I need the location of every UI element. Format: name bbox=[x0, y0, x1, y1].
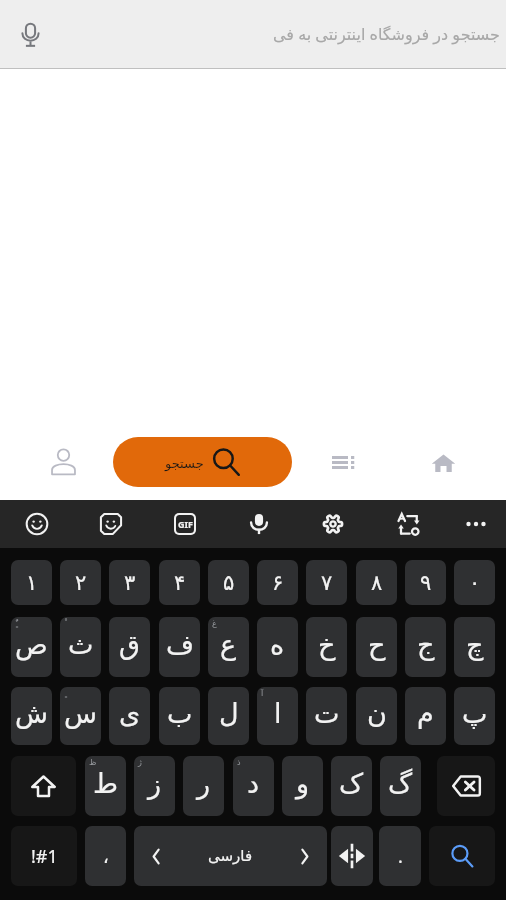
button[interactable]: آ bbox=[257, 687, 298, 745]
staticText: ق bbox=[119, 629, 140, 660]
staticText: خ bbox=[318, 629, 336, 660]
staticText: د bbox=[247, 768, 260, 799]
button[interactable]: ک bbox=[331, 756, 372, 816]
staticText: ب bbox=[167, 698, 193, 729]
button[interactable]: Categories bbox=[320, 439, 366, 485]
button[interactable]: ، bbox=[85, 826, 126, 886]
button[interactable]: و bbox=[282, 756, 323, 816]
staticText: ۸ bbox=[371, 571, 383, 595]
staticText: ف bbox=[166, 629, 194, 660]
button[interactable]: ر bbox=[183, 756, 224, 816]
button[interactable]: ظ bbox=[85, 756, 126, 816]
button[interactable]: Stickers bbox=[89, 500, 133, 548]
button[interactable]: غ bbox=[208, 617, 249, 677]
staticText: ج bbox=[417, 629, 435, 660]
staticText: ک bbox=[339, 768, 364, 799]
button[interactable]: ق bbox=[109, 617, 150, 677]
button[interactable]: ل bbox=[208, 687, 249, 745]
staticText: ث bbox=[68, 629, 94, 660]
button[interactable]: ۴ bbox=[159, 560, 200, 605]
staticText: ۳ bbox=[124, 571, 136, 595]
button[interactable]: گ bbox=[380, 756, 421, 816]
staticText: ۴ bbox=[174, 571, 186, 595]
staticText: جستجو در فروشگاه اینترنتی به فی bbox=[273, 23, 500, 45]
button[interactable]: Symbols bbox=[11, 826, 77, 886]
button[interactable]: More options bbox=[454, 500, 498, 548]
staticText: ز bbox=[148, 768, 162, 799]
button[interactable]: ۷ bbox=[306, 560, 347, 605]
staticText: ۰ bbox=[469, 571, 481, 595]
staticText: ه bbox=[270, 629, 285, 660]
button[interactable]: ۹ bbox=[405, 560, 446, 605]
staticText: گ bbox=[388, 768, 413, 799]
button[interactable]: Shift bbox=[11, 756, 76, 816]
button[interactable]: چ bbox=[454, 617, 495, 677]
button[interactable]: Move cursor bbox=[331, 826, 373, 886]
button[interactable]: ًٌٍ bbox=[11, 617, 52, 677]
button[interactable]: ف bbox=[159, 617, 200, 677]
button[interactable]: Search bbox=[429, 826, 495, 886]
staticText: غ bbox=[212, 619, 217, 628]
staticText: آ bbox=[261, 689, 264, 698]
button[interactable]: ۰ bbox=[454, 560, 495, 605]
button[interactable]: ۲ bbox=[60, 560, 101, 605]
button[interactable]: Emoji bbox=[15, 500, 59, 548]
staticText: جستجو bbox=[165, 456, 204, 471]
staticText: پ bbox=[462, 698, 488, 729]
button[interactable]: ش bbox=[11, 687, 52, 745]
staticText: ذ bbox=[237, 758, 241, 767]
staticText: ت bbox=[314, 698, 340, 729]
button[interactable]: ن bbox=[356, 687, 397, 745]
button[interactable]: ب bbox=[159, 687, 200, 745]
staticText: ص bbox=[15, 629, 48, 660]
staticText: ا bbox=[274, 698, 282, 729]
button[interactable]: ۶ bbox=[257, 560, 298, 605]
staticText: ۷ bbox=[321, 571, 333, 595]
button[interactable]: خ bbox=[306, 617, 347, 677]
staticText: ی bbox=[119, 698, 141, 729]
button[interactable]: ژ bbox=[134, 756, 175, 816]
staticText: س bbox=[64, 698, 97, 729]
button[interactable]: Voice search bbox=[0, 0, 506, 69]
button[interactable]: Space bbox=[134, 826, 327, 886]
button[interactable]: Backspace bbox=[437, 756, 495, 816]
button[interactable]: ه bbox=[257, 617, 298, 677]
staticText: ن bbox=[367, 698, 387, 729]
button[interactable]: م bbox=[405, 687, 446, 745]
button[interactable]: Voice search bbox=[12, 16, 48, 52]
button[interactable]: ۱ bbox=[11, 560, 52, 605]
button[interactable]: پ bbox=[454, 687, 495, 745]
button[interactable]: ْ bbox=[60, 617, 101, 677]
staticText: !#1 bbox=[31, 844, 58, 869]
button[interactable]: Home bbox=[420, 439, 466, 485]
staticText: ۱ bbox=[26, 571, 38, 595]
button[interactable]: ذ bbox=[233, 756, 274, 816]
button[interactable]: Translate bbox=[386, 500, 430, 548]
staticText: م bbox=[417, 698, 434, 729]
button[interactable]: Voice input bbox=[237, 500, 281, 548]
staticText: و bbox=[296, 768, 310, 799]
staticText: ۶ bbox=[272, 571, 284, 595]
staticText: ع bbox=[220, 629, 237, 660]
staticText: چ bbox=[466, 629, 484, 660]
staticText: ۲ bbox=[75, 571, 87, 595]
button[interactable]: Profile bbox=[40, 439, 86, 485]
button[interactable]: ت bbox=[306, 687, 347, 745]
button[interactable]: ح bbox=[356, 617, 397, 677]
staticText: ۹ bbox=[420, 571, 432, 595]
staticText: ح bbox=[368, 629, 386, 660]
staticText: ژ bbox=[138, 758, 142, 767]
button[interactable]: ٍ bbox=[60, 687, 101, 745]
button[interactable]: . bbox=[379, 826, 421, 886]
button[interactable]: ۵ bbox=[208, 560, 249, 605]
button[interactable]: GIF bbox=[163, 500, 207, 548]
button[interactable]: جستجو bbox=[113, 437, 292, 487]
button[interactable]: ۸ bbox=[356, 560, 397, 605]
staticText: ۵ bbox=[223, 571, 235, 595]
button[interactable]: ی bbox=[109, 687, 150, 745]
staticText: ل bbox=[219, 698, 239, 729]
button[interactable]: Settings bbox=[311, 500, 355, 548]
staticText: . bbox=[398, 844, 403, 869]
button[interactable]: ج bbox=[405, 617, 446, 677]
button[interactable]: ۳ bbox=[109, 560, 150, 605]
